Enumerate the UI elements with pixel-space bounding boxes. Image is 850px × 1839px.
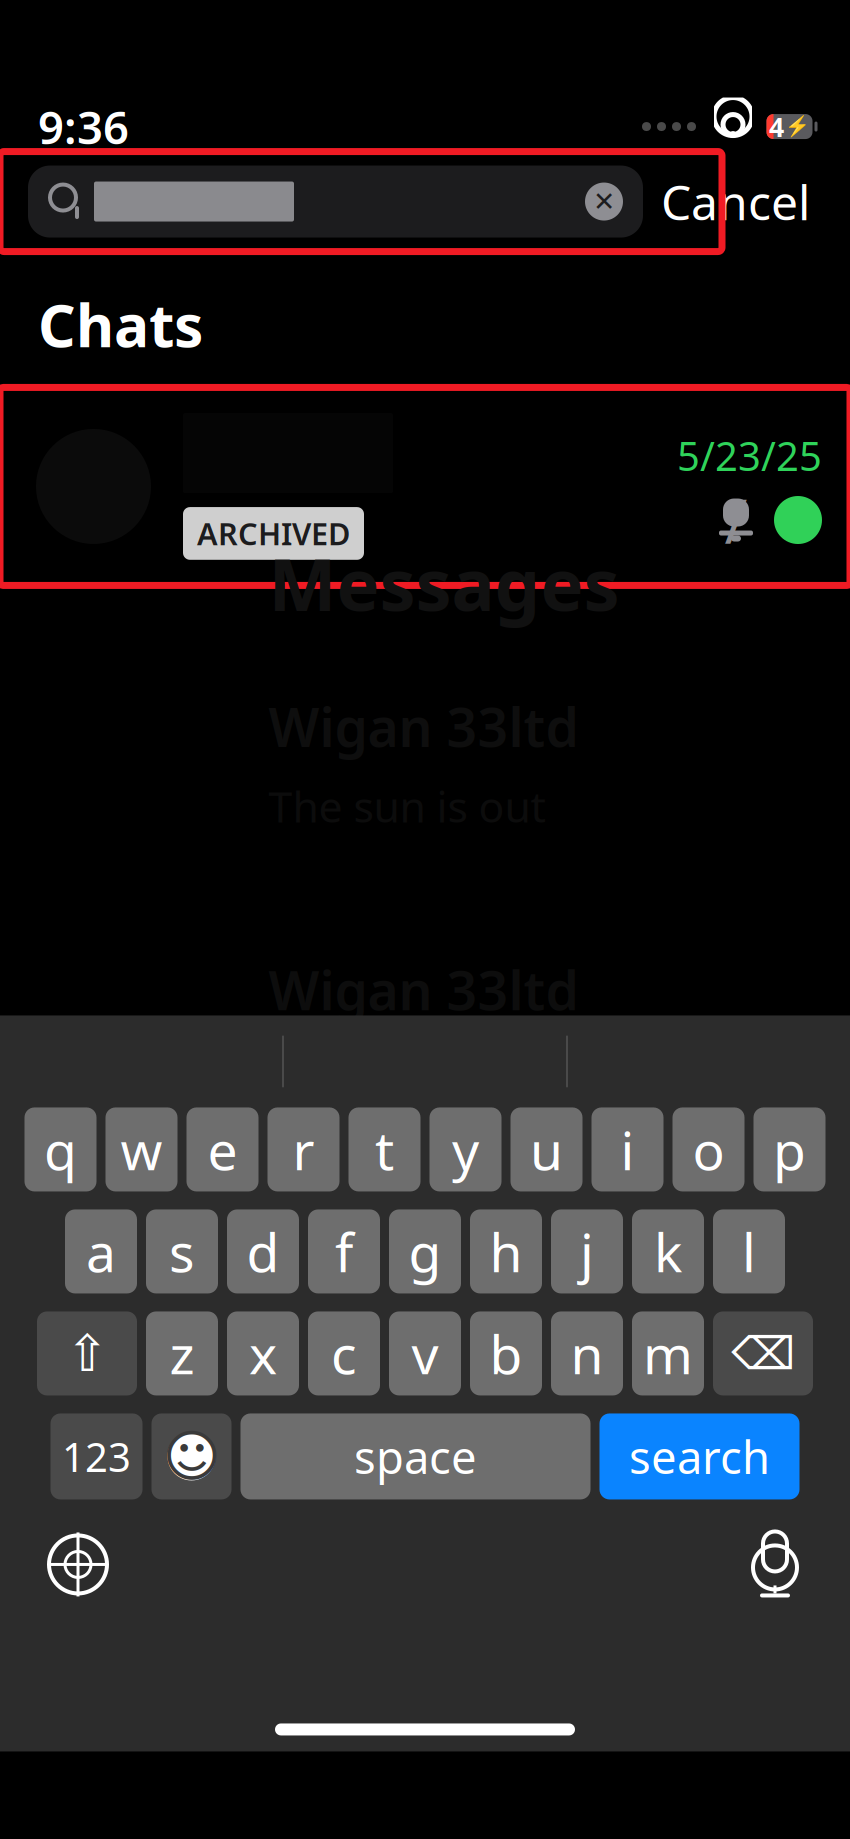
staticText: f: [335, 1216, 353, 1287]
staticText: o: [692, 1114, 724, 1185]
staticText: n: [570, 1318, 603, 1389]
staticText: Cancel: [661, 170, 810, 233]
button[interactable]: a: [65, 1209, 137, 1293]
button[interactable]: m: [632, 1311, 704, 1395]
button[interactable]: Delete: [713, 1311, 813, 1395]
button[interactable]: x: [227, 1311, 299, 1395]
button[interactable]: v: [389, 1311, 461, 1395]
staticText: c: [331, 1318, 357, 1389]
staticText: b: [489, 1318, 522, 1389]
button[interactable]: c: [308, 1311, 380, 1395]
staticText: a: [86, 1216, 116, 1287]
button[interactable]: 123: [50, 1413, 142, 1499]
staticText: u: [530, 1114, 563, 1185]
staticText: w: [120, 1114, 162, 1185]
button[interactable]: h: [470, 1209, 542, 1293]
staticText: t: [375, 1114, 394, 1185]
staticText: 9:36: [38, 96, 129, 157]
button[interactable]: o: [672, 1107, 744, 1191]
staticText: /: [724, 479, 747, 561]
button[interactable]: u: [510, 1107, 582, 1191]
staticText: Photo: [268, 1041, 387, 1098]
button[interactable]: Shift: [37, 1311, 137, 1395]
staticText: z: [169, 1318, 194, 1389]
staticText: y: [452, 1114, 479, 1185]
button[interactable]: k: [632, 1209, 704, 1293]
staticText: ☺: [162, 1425, 220, 1488]
button[interactable]: e: [186, 1107, 258, 1191]
button[interactable]: Clear text: [575, 172, 633, 230]
button[interactable]: n: [551, 1311, 623, 1395]
staticText: v: [411, 1318, 438, 1389]
staticText: i: [620, 1114, 634, 1185]
button[interactable]: Next keyboard: [24, 1522, 132, 1606]
button[interactable]: l: [713, 1209, 785, 1293]
staticText: e: [207, 1114, 237, 1185]
staticText: search: [629, 1426, 770, 1487]
staticText: ARCHIVED: [197, 513, 350, 554]
staticText: 4: [769, 109, 784, 144]
staticText: 5/23/25: [677, 429, 822, 482]
button[interactable]: Cancel: [643, 165, 828, 237]
staticText: j: [580, 1216, 594, 1287]
staticText: ⌫: [731, 1328, 795, 1379]
button[interactable]: Emoji: [151, 1413, 231, 1499]
staticText: 123: [62, 1430, 131, 1483]
button[interactable]: b: [470, 1311, 542, 1395]
button[interactable]: p: [753, 1107, 825, 1191]
staticText: s: [169, 1216, 195, 1287]
staticText: x: [249, 1318, 277, 1389]
button[interactable]: w: [105, 1107, 177, 1191]
button[interactable]: j: [551, 1209, 623, 1293]
button[interactable]: s: [146, 1209, 218, 1293]
button[interactable]: Dictate: [724, 1521, 826, 1607]
button[interactable]: z: [146, 1311, 218, 1395]
button[interactable]: d: [227, 1209, 299, 1293]
staticText: d: [246, 1216, 279, 1287]
staticText: h: [489, 1216, 522, 1287]
staticText: ⇧: [66, 1325, 108, 1382]
staticText: r: [292, 1114, 314, 1185]
staticText: Messages: [268, 535, 619, 631]
button[interactable]: space: [240, 1413, 590, 1499]
staticText: space: [354, 1426, 477, 1487]
staticText: k: [654, 1216, 682, 1287]
staticText: m: [643, 1318, 693, 1389]
button[interactable]: t: [348, 1107, 420, 1191]
staticText: ✕: [593, 186, 615, 217]
staticText: Chats: [38, 285, 203, 363]
staticText: q: [44, 1114, 77, 1185]
staticText: g: [408, 1216, 441, 1287]
staticText: p: [773, 1114, 806, 1185]
button[interactable]: f: [308, 1209, 380, 1293]
button[interactable]: y: [429, 1107, 501, 1191]
staticText: l: [742, 1216, 756, 1287]
staticText: The sun is out: [268, 778, 545, 834]
button[interactable]: q: [24, 1107, 96, 1191]
staticText: Wigan 33ltd: [268, 691, 578, 762]
button[interactable]: search: [599, 1413, 799, 1499]
button[interactable]: i: [591, 1107, 663, 1191]
button[interactable]: g: [389, 1209, 461, 1293]
button[interactable]: r: [267, 1107, 339, 1191]
staticText: ⚡: [785, 115, 810, 138]
staticText: Wigan 33ltd: [268, 954, 578, 1025]
